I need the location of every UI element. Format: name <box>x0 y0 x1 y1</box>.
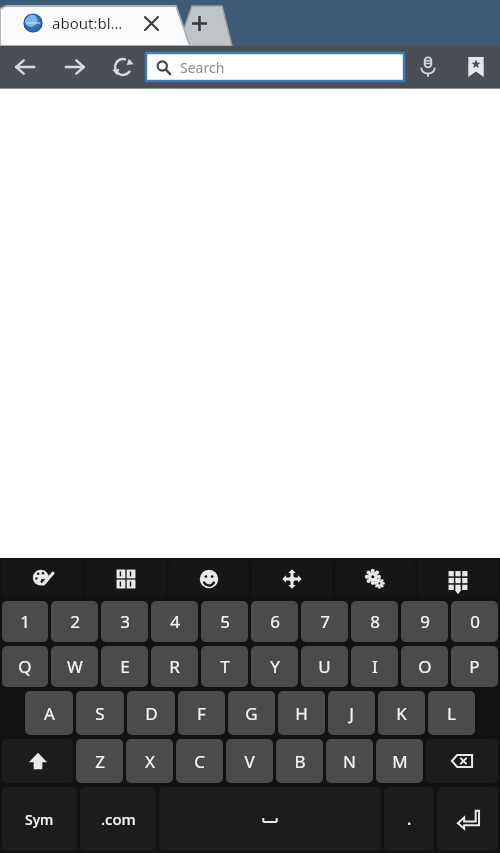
button[interactable]: J <box>328 691 375 735</box>
button[interactable]: 0 <box>451 601 498 642</box>
staticText: X <box>145 750 155 773</box>
button[interactable]: Z <box>76 739 123 783</box>
staticText: 3 <box>120 610 130 633</box>
staticText: D <box>145 702 158 725</box>
button[interactable]: Backspace <box>426 739 498 783</box>
button[interactable]: 1 <box>2 601 48 642</box>
staticText: P <box>469 655 480 678</box>
staticText: 0 <box>470 610 480 633</box>
staticText: G <box>245 702 258 725</box>
staticText: 8 <box>370 610 380 633</box>
button[interactable]: P <box>451 646 498 687</box>
staticText: 9 <box>420 610 430 633</box>
staticText: B <box>294 750 306 773</box>
button[interactable]: . <box>384 787 434 851</box>
staticText: W <box>67 655 83 678</box>
button[interactable]: Sym <box>2 787 77 851</box>
staticText: Search <box>180 58 225 77</box>
staticText: E <box>120 655 130 678</box>
staticText: 4 <box>170 610 180 633</box>
button[interactable]: D <box>127 691 175 735</box>
button[interactable]: T <box>201 646 248 687</box>
button[interactable]: M <box>376 739 423 783</box>
button[interactable]: 3 <box>101 601 148 642</box>
button[interactable]: X <box>126 739 173 783</box>
staticText: Y <box>270 655 280 678</box>
button[interactable]: Move cursor <box>252 560 332 597</box>
button[interactable]: Enter <box>437 787 498 851</box>
button[interactable]: Search <box>146 53 404 81</box>
button[interactable]: Q <box>2 646 48 687</box>
button[interactable]: H <box>278 691 325 735</box>
staticText: 5 <box>220 610 230 633</box>
staticText: 2 <box>70 610 80 633</box>
button[interactable]: F <box>178 691 225 735</box>
button[interactable]: Forward <box>50 46 100 88</box>
button[interactable]: U <box>301 646 348 687</box>
staticText: R <box>169 655 180 678</box>
staticText: U <box>318 655 331 678</box>
staticText: C <box>194 750 205 773</box>
button[interactable]: G <box>228 691 275 735</box>
staticText: I <box>372 655 378 678</box>
button[interactable]: Close tab <box>138 10 164 36</box>
staticText: 7 <box>320 610 330 633</box>
button[interactable]: Reload <box>100 46 146 88</box>
button[interactable]: Emoji <box>169 560 249 597</box>
button[interactable]: Y <box>251 646 298 687</box>
staticText: A <box>44 702 55 725</box>
button[interactable]: Hide keyboard <box>418 560 498 597</box>
button[interactable]: L <box>428 691 475 735</box>
button[interactable]: Settings <box>335 560 415 597</box>
button[interactable]: Shift <box>2 739 73 783</box>
button[interactable]: Back <box>0 46 50 88</box>
staticText: H <box>295 702 308 725</box>
staticText: K <box>396 702 407 725</box>
button[interactable]: E <box>101 646 148 687</box>
staticText: L <box>447 702 456 725</box>
staticText: O <box>418 655 432 678</box>
staticText: Sym <box>25 810 54 829</box>
staticText: T <box>220 655 230 678</box>
button[interactable]: 5 <box>201 601 248 642</box>
staticText: M <box>392 750 408 773</box>
button[interactable]: N <box>326 739 373 783</box>
staticText: Q <box>18 655 32 678</box>
button[interactable]: I <box>351 646 398 687</box>
button[interactable]: .com <box>80 787 156 851</box>
staticText: V <box>244 750 255 773</box>
staticText: 1 <box>20 610 30 633</box>
staticText: N <box>343 750 356 773</box>
button[interactable]: K <box>378 691 425 735</box>
staticText: S <box>95 702 105 725</box>
staticText: about:bl… <box>52 13 123 33</box>
button[interactable] <box>0 0 500 46</box>
button[interactable]: 9 <box>401 601 448 642</box>
staticText: F <box>197 702 206 725</box>
button[interactable]: W <box>51 646 98 687</box>
staticText: . <box>407 808 412 830</box>
button[interactable]: 8 <box>351 601 398 642</box>
button[interactable]: 4 <box>151 601 198 642</box>
button[interactable]: R <box>151 646 198 687</box>
staticText: .com <box>101 809 136 829</box>
button[interactable]: Theme <box>2 560 83 597</box>
button[interactable]: Space <box>159 787 381 851</box>
staticText: J <box>349 702 354 725</box>
button[interactable]: 2 <box>51 601 98 642</box>
button[interactable]: S <box>76 691 124 735</box>
button[interactable]: Number pad <box>86 560 166 597</box>
button[interactable]: Bookmarks <box>452 46 500 88</box>
button[interactable]: O <box>401 646 448 687</box>
button[interactable]: C <box>176 739 223 783</box>
button[interactable]: V <box>226 739 273 783</box>
button[interactable]: 6 <box>251 601 298 642</box>
button[interactable]: B <box>276 739 323 783</box>
button[interactable]: A <box>25 691 73 735</box>
button[interactable]: Voice search <box>404 46 452 88</box>
button[interactable]: New tab <box>184 8 214 38</box>
staticText: Z <box>95 750 105 773</box>
button[interactable]: 7 <box>301 601 348 642</box>
staticText: 6 <box>270 610 280 633</box>
